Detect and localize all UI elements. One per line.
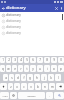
button[interactable]: ?123: [0, 92, 9, 99]
staticText: dictionary: [6, 19, 21, 23]
staticText: dictionary: [6, 31, 21, 35]
button[interactable]: Emoji: [10, 92, 17, 99]
button[interactable]: e: [12, 65, 17, 72]
staticText: y: [32, 67, 34, 71]
button[interactable]: m: [49, 83, 55, 90]
button[interactable]: english: [18, 92, 45, 99]
button[interactable]: u: [37, 65, 43, 72]
button[interactable]: Search: [54, 92, 64, 99]
staticText: n: [44, 85, 46, 89]
button[interactable]: 9: [51, 57, 57, 63]
staticText: x: [16, 85, 18, 89]
button[interactable]: 3: [12, 57, 17, 63]
staticText: 5: [26, 58, 28, 62]
staticText: u: [39, 67, 41, 71]
staticText: f: [23, 76, 25, 80]
button[interactable]: w: [6, 65, 11, 72]
button[interactable]: .: [46, 92, 53, 99]
button[interactable]: p: [58, 65, 64, 72]
staticText: b: [37, 85, 39, 89]
button[interactable]: dictionary: [0, 12, 64, 18]
button[interactable]: n: [42, 83, 48, 90]
button[interactable]: Clear query: [54, 4, 59, 12]
button[interactable]: Voice search: [59, 4, 64, 12]
staticText: .: [49, 94, 50, 98]
button[interactable]: q: [0, 65, 5, 72]
staticText: 1: [2, 58, 4, 62]
button[interactable]: b: [35, 83, 41, 90]
staticText: q: [2, 67, 4, 71]
staticText: w: [7, 67, 10, 71]
staticText: english: [27, 94, 36, 97]
staticText: 4: [20, 58, 22, 62]
staticText: 8: [46, 58, 48, 62]
button[interactable]: 5: [24, 57, 29, 63]
button[interactable]: d: [15, 74, 20, 81]
staticText: t: [26, 67, 28, 71]
button[interactable]: 4: [18, 57, 23, 63]
staticText: v: [30, 85, 32, 89]
staticText: l: [58, 76, 59, 80]
staticText: c: [23, 85, 25, 89]
button[interactable]: a: [3, 74, 8, 81]
button[interactable]: v: [28, 83, 34, 90]
staticText: 2: [8, 58, 10, 62]
staticText: dictionary: [6, 25, 21, 29]
button[interactable]: 6: [30, 57, 36, 63]
staticText: m: [51, 85, 54, 89]
staticText: ?123: [2, 94, 8, 97]
button[interactable]: c: [21, 83, 27, 90]
button[interactable]: dictionary: [0, 24, 64, 30]
staticText: 6: [32, 58, 34, 62]
button[interactable]: j: [41, 74, 47, 81]
button[interactable]: o: [51, 65, 57, 72]
staticText: d: [17, 76, 19, 80]
button[interactable]: Shift: [0, 83, 7, 90]
button[interactable]: h: [34, 74, 40, 81]
staticText: 7: [39, 58, 41, 62]
staticText: h: [36, 76, 38, 80]
staticText: 0: [60, 58, 62, 62]
button[interactable]: Navigate up: [0, 4, 6, 12]
button[interactable]: 1: [0, 57, 5, 63]
button[interactable]: f: [21, 74, 26, 81]
staticText: g: [29, 76, 31, 80]
staticText: 9: [53, 58, 55, 62]
button[interactable]: y: [30, 65, 36, 72]
button[interactable]: 0: [58, 57, 64, 63]
button[interactable]: t: [24, 65, 29, 72]
staticText: a: [5, 76, 7, 80]
button[interactable]: s: [9, 74, 14, 81]
button[interactable]: dictionary: [0, 18, 64, 24]
staticText: e: [14, 67, 16, 71]
button[interactable]: i: [44, 65, 50, 72]
staticText: j: [44, 76, 45, 80]
button[interactable]: 7: [37, 57, 43, 63]
button[interactable]: g: [27, 74, 33, 81]
button[interactable]: l: [55, 74, 61, 81]
staticText: 3: [14, 58, 16, 62]
button[interactable]: z: [8, 83, 13, 90]
staticText: o: [53, 67, 55, 71]
staticText: dictionary: [6, 5, 54, 11]
button[interactable]: 8: [44, 57, 50, 63]
staticText: s: [11, 76, 13, 80]
button[interactable]: dictionary: [0, 30, 64, 36]
button[interactable]: 2: [6, 57, 11, 63]
button[interactable]: x: [14, 83, 20, 90]
staticText: r: [20, 67, 22, 71]
staticText: k: [50, 76, 52, 80]
staticText: p: [60, 67, 62, 71]
button[interactable]: k: [48, 74, 54, 81]
staticText: i: [47, 67, 48, 71]
staticText: z: [10, 85, 12, 89]
button[interactable]: Backspace: [56, 83, 64, 90]
staticText: dictionary: [6, 13, 21, 17]
button[interactable]: r: [18, 65, 23, 72]
